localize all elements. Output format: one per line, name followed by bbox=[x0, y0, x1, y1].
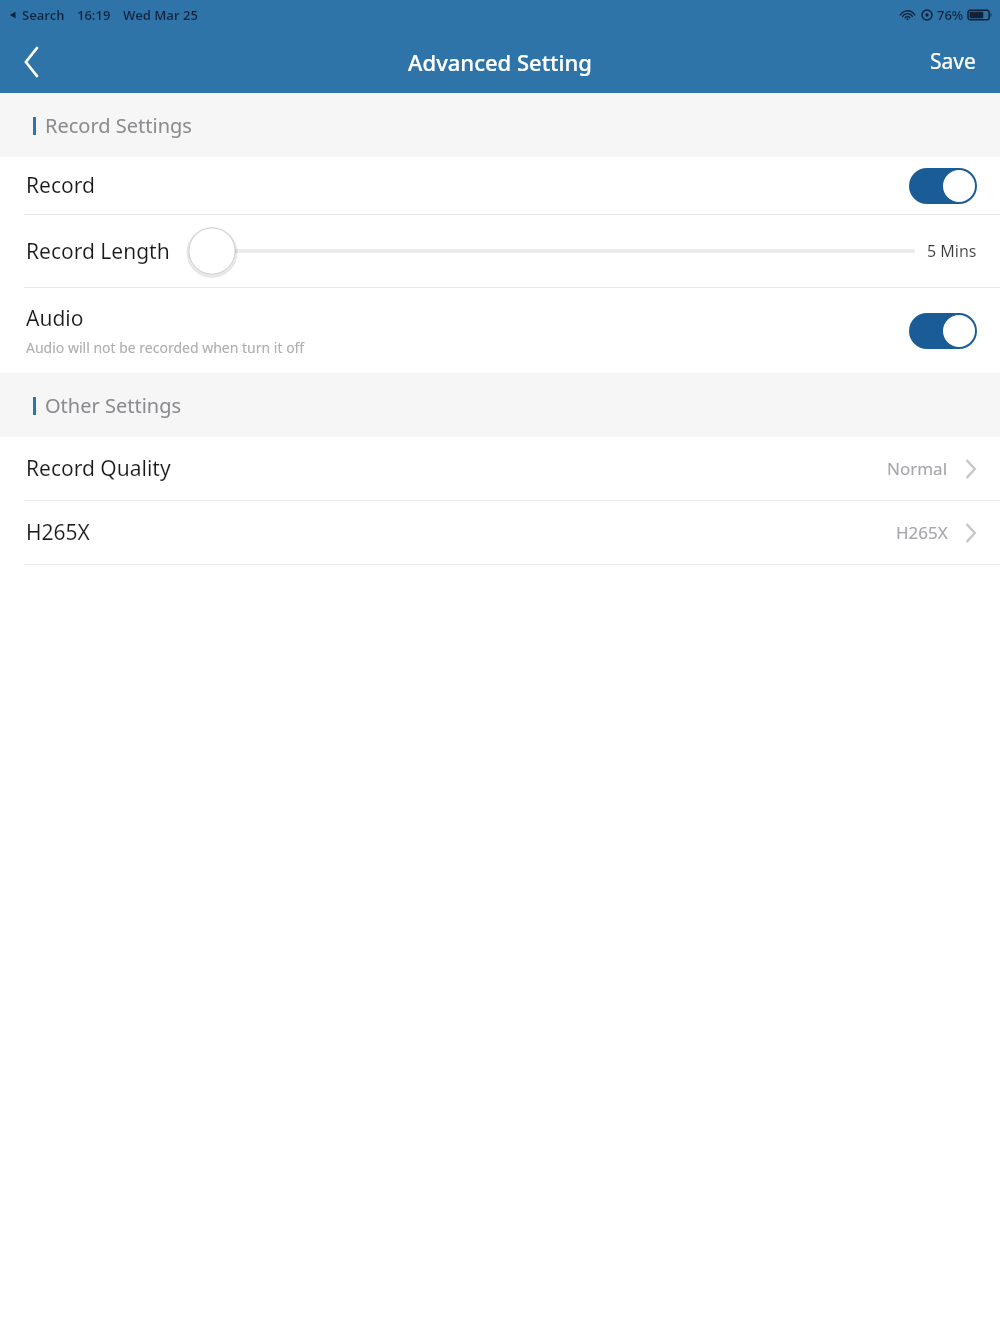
button[interactable]: Back bbox=[0, 30, 64, 93]
staticText: Record Settings bbox=[45, 112, 192, 139]
staticText: Search bbox=[22, 6, 65, 24]
staticText: 16:19 bbox=[77, 6, 111, 24]
staticText: 5 Mins bbox=[927, 240, 977, 262]
staticText: Audio bbox=[26, 304, 84, 333]
staticText: Record bbox=[26, 171, 95, 200]
button[interactable]: Save bbox=[920, 39, 986, 84]
staticText: Record Quality bbox=[26, 454, 171, 483]
staticText: Normal bbox=[887, 457, 948, 480]
staticText: Other Settings bbox=[45, 392, 182, 419]
button[interactable]: Toggle bbox=[909, 313, 977, 349]
button[interactable]: Record bbox=[0, 157, 1000, 214]
button[interactable]: H265X bbox=[0, 501, 1000, 564]
button[interactable]: Record Quality bbox=[0, 437, 1000, 500]
button[interactable]: Audio bbox=[0, 288, 1000, 373]
staticText: Record Length bbox=[26, 237, 170, 266]
button[interactable]: Toggle bbox=[909, 168, 977, 204]
staticText: H265X bbox=[896, 521, 948, 544]
staticText: Wed Mar 25 bbox=[123, 6, 198, 24]
staticText: Advanced Setting bbox=[408, 47, 592, 77]
staticText: Save bbox=[930, 47, 976, 76]
button[interactable]: Record Length bbox=[0, 215, 1000, 287]
staticText: Audio will not be recorded when turn it … bbox=[26, 338, 305, 357]
staticText: H265X bbox=[26, 518, 90, 547]
staticText: 76% bbox=[937, 6, 964, 24]
